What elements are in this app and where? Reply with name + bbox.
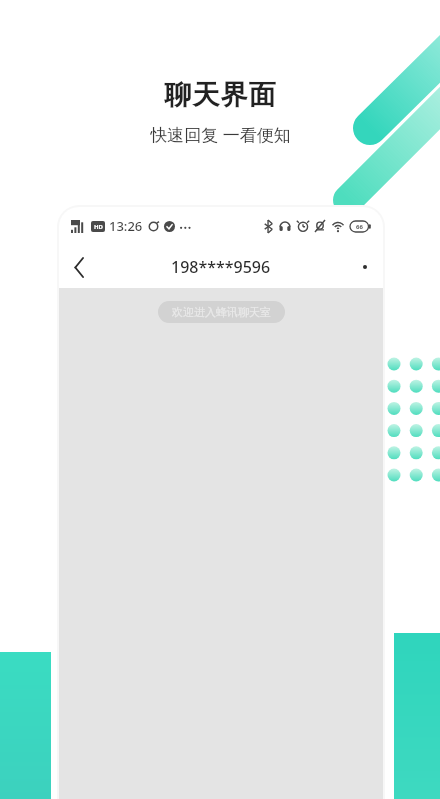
staticText: 聊天界面 xyxy=(164,78,276,112)
staticText: 快速回复 一看便知 xyxy=(150,123,291,146)
staticText: 13:26 xyxy=(109,217,143,235)
staticText: 66 xyxy=(356,223,363,231)
button[interactable]: 欢迎进入蜂讯聊天室 xyxy=(158,301,285,323)
staticText: 198****9596 xyxy=(171,256,271,278)
button[interactable]: Back xyxy=(59,247,99,287)
staticText: 欢迎进入蜂讯聊天室 xyxy=(172,305,271,319)
button[interactable]: More options xyxy=(347,249,383,285)
staticText: HD xyxy=(94,223,103,231)
